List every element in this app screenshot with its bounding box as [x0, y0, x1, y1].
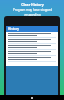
staticText: Program may have stopped: [13, 8, 52, 12]
staticText: responding: [24, 13, 41, 17]
staticText: History: [8, 27, 19, 31]
staticText: Clear History: [21, 2, 44, 7]
